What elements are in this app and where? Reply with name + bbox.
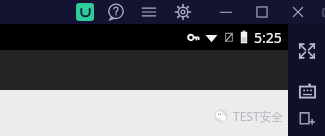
button[interactable]: Collapse <box>321 1 325 23</box>
button[interactable]: Screenshot <box>294 106 320 132</box>
staticText: TEST安全 <box>233 108 284 124</box>
button[interactable]: Fullscreen <box>294 38 320 64</box>
button[interactable]: Settings <box>173 2 193 22</box>
button[interactable]: Keyboard <box>294 78 320 104</box>
staticText: 5:25 <box>254 28 282 47</box>
button[interactable]: Close <box>287 1 309 23</box>
button[interactable]: Help <box>106 2 126 22</box>
button[interactable]: Minimize <box>215 1 237 23</box>
button[interactable]: Menu <box>139 2 159 22</box>
button[interactable]: Maximize <box>251 1 273 23</box>
button[interactable]: App icon <box>76 3 94 21</box>
